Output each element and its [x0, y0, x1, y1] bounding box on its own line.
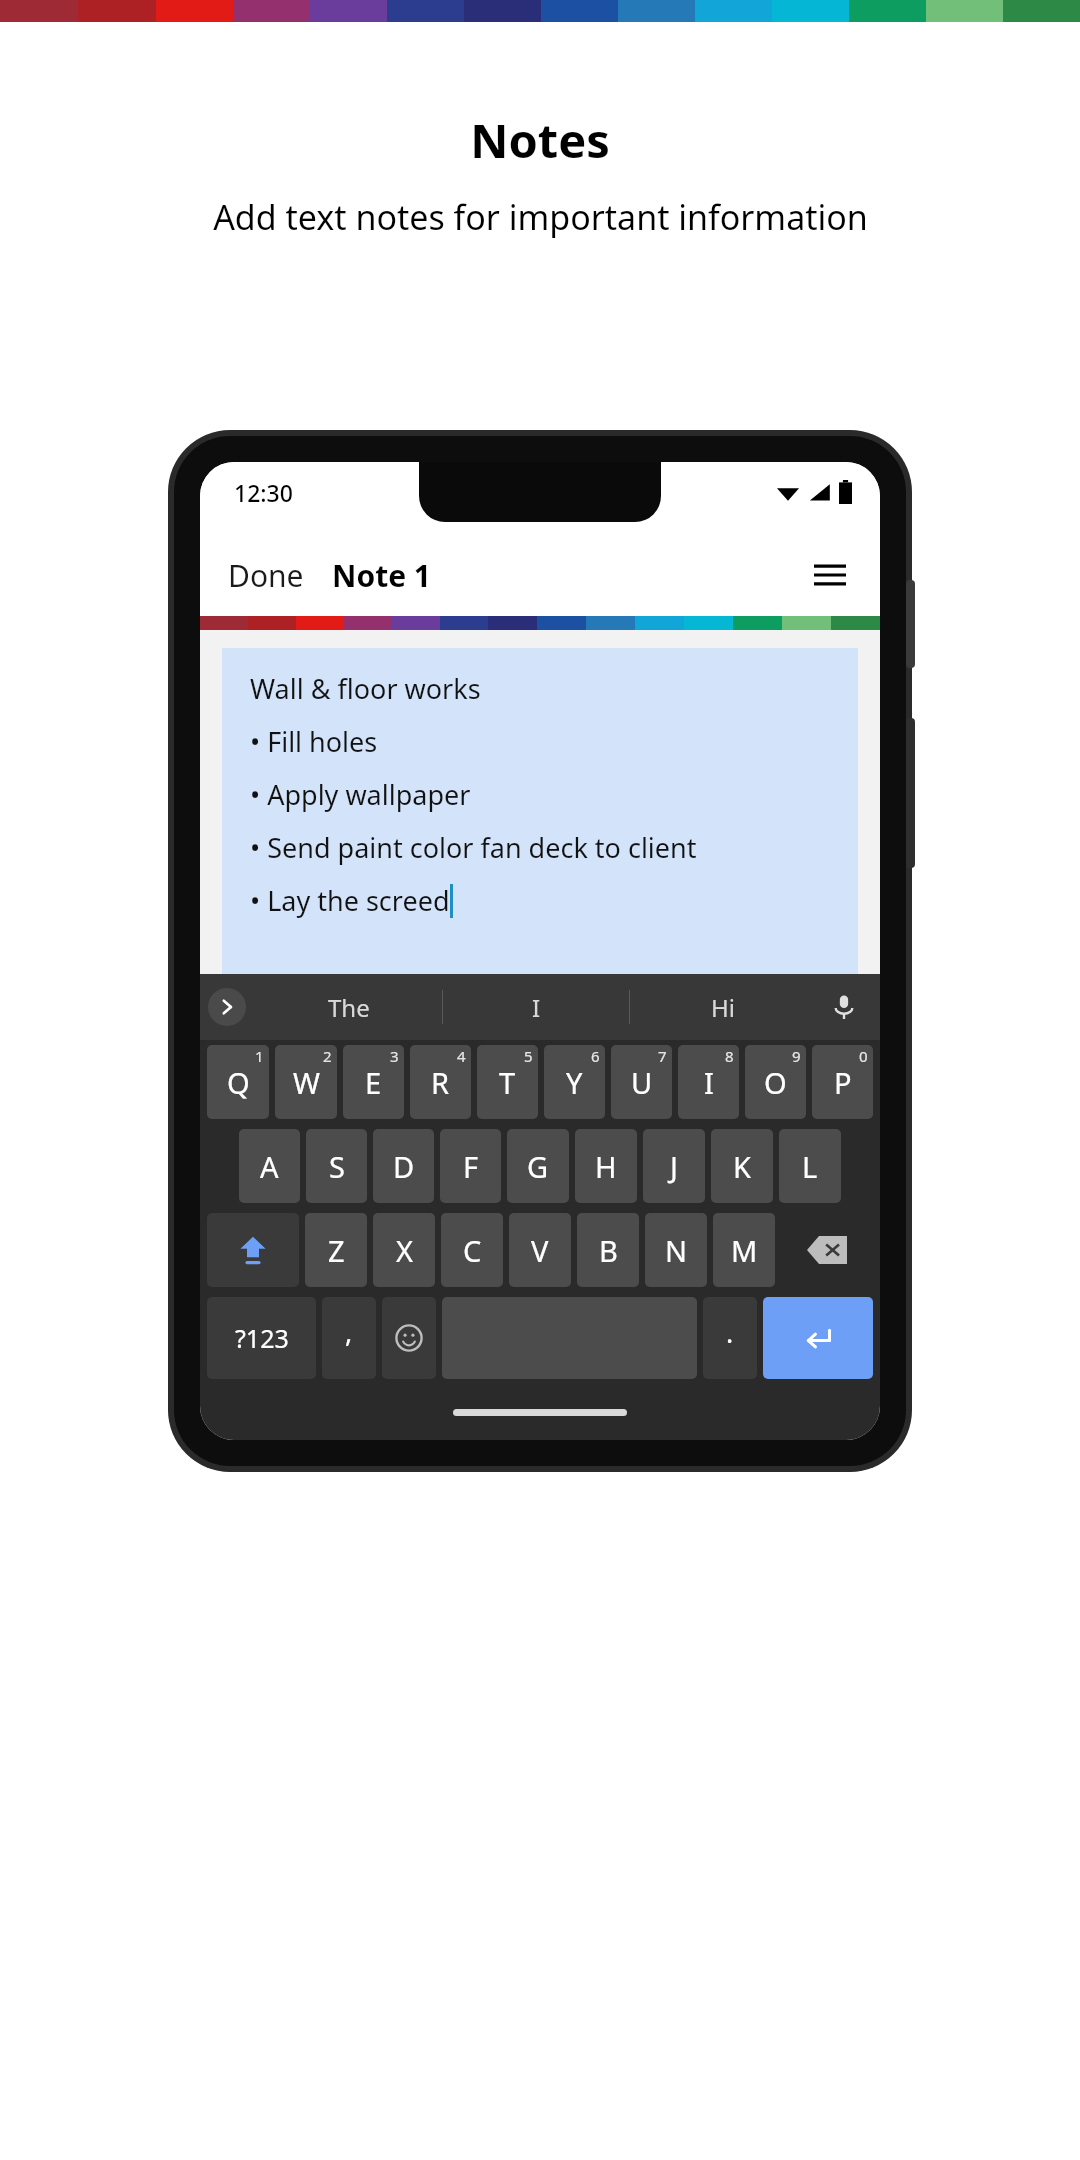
staticText: 12:30	[234, 477, 293, 508]
button[interactable]: T	[477, 1045, 538, 1119]
staticText: O	[764, 1063, 787, 1102]
staticText: Hi	[711, 991, 735, 1024]
button[interactable]: E	[343, 1045, 404, 1119]
button[interactable]: Menu	[792, 537, 868, 613]
staticText: ?123	[235, 1321, 289, 1355]
staticText: F	[463, 1147, 479, 1186]
button[interactable]: K	[711, 1129, 773, 1203]
staticText: • Apply wallpaper	[250, 776, 471, 813]
button[interactable]: Y	[544, 1045, 605, 1119]
button[interactable]: Wall & floor works	[222, 648, 858, 974]
button[interactable]: V	[509, 1213, 571, 1287]
staticText: A	[260, 1147, 279, 1186]
button[interactable]: Expand suggestions	[208, 988, 246, 1026]
staticText: U	[631, 1063, 653, 1102]
staticText: 8	[725, 1046, 734, 1066]
staticText: E	[365, 1063, 382, 1102]
staticText: D	[393, 1147, 415, 1186]
button[interactable]: I	[443, 974, 629, 1040]
button[interactable]: B	[577, 1213, 639, 1287]
button[interactable]: Voice input	[822, 985, 866, 1029]
button[interactable]: Shift	[207, 1213, 299, 1287]
button[interactable]: Emoji	[382, 1297, 436, 1379]
button[interactable]: Q	[207, 1045, 269, 1119]
staticText: C	[463, 1231, 482, 1270]
button[interactable]: Done	[200, 545, 332, 606]
button[interactable]: R	[410, 1045, 471, 1119]
staticText: 6	[591, 1046, 600, 1066]
staticText: 5	[524, 1046, 533, 1066]
staticText: • Fill holes	[250, 723, 378, 760]
button[interactable]: H	[575, 1129, 637, 1203]
button[interactable]: W	[275, 1045, 337, 1119]
staticText: W	[293, 1063, 320, 1102]
staticText: X	[396, 1231, 413, 1270]
staticText: Note 1	[332, 555, 432, 596]
staticText: I	[532, 991, 541, 1024]
staticText: K	[733, 1147, 751, 1186]
staticText: The	[328, 991, 370, 1024]
button[interactable]: G	[507, 1129, 569, 1203]
staticText: L	[802, 1147, 818, 1186]
button[interactable]: X	[373, 1213, 435, 1287]
button[interactable]: .	[703, 1297, 757, 1379]
staticText: 4	[457, 1046, 466, 1066]
button[interactable]: L	[779, 1129, 841, 1203]
button[interactable]: U	[611, 1045, 672, 1119]
staticText: Wall & floor works	[250, 670, 481, 707]
button[interactable]: The	[256, 974, 442, 1040]
staticText: R	[431, 1063, 450, 1102]
button[interactable]: A	[239, 1129, 300, 1203]
button[interactable]: J	[643, 1129, 705, 1203]
staticText: 9	[792, 1046, 801, 1066]
staticText: 1	[255, 1046, 264, 1066]
button[interactable]: Enter	[763, 1297, 873, 1379]
button[interactable]: F	[440, 1129, 501, 1203]
button[interactable]: S	[306, 1129, 367, 1203]
staticText: • Send paint color fan deck to client	[250, 829, 697, 866]
button[interactable]: Z	[305, 1213, 367, 1287]
staticText: Z	[328, 1231, 345, 1270]
staticText: P	[834, 1063, 852, 1102]
staticText: B	[599, 1231, 618, 1270]
button[interactable]: M	[713, 1213, 775, 1287]
staticText: J	[670, 1147, 678, 1186]
staticText: ,	[345, 1313, 353, 1350]
button[interactable]: Hi	[630, 974, 816, 1040]
staticText: I	[704, 1063, 714, 1102]
staticText: T	[499, 1063, 516, 1102]
button[interactable]: ,	[322, 1297, 376, 1379]
staticText: H	[595, 1147, 617, 1186]
button[interactable]: ?123	[207, 1297, 316, 1379]
button[interactable]: N	[645, 1213, 707, 1287]
button[interactable]: O	[745, 1045, 806, 1119]
staticText: Notes	[470, 108, 610, 172]
staticText: Y	[566, 1063, 583, 1102]
staticText: .	[726, 1314, 734, 1351]
staticText: G	[527, 1147, 549, 1186]
staticText: N	[665, 1231, 688, 1270]
staticText: 7	[658, 1046, 667, 1066]
staticText: Add text notes for important information	[213, 194, 868, 240]
button[interactable]: C	[441, 1213, 503, 1287]
staticText: S	[329, 1147, 345, 1186]
staticText: V	[531, 1231, 549, 1270]
button[interactable]: I	[678, 1045, 739, 1119]
staticText: Q	[227, 1063, 250, 1102]
button[interactable]: Backspace	[781, 1213, 873, 1287]
staticText: • Lay the screed	[250, 882, 450, 919]
button[interactable]: Undo	[758, 1012, 842, 1096]
staticText: 2	[323, 1046, 332, 1066]
staticText: 3	[390, 1046, 399, 1066]
staticText: M	[731, 1231, 758, 1270]
button[interactable]: D	[373, 1129, 434, 1203]
button[interactable]: P	[812, 1045, 873, 1119]
staticText: 0	[859, 1046, 868, 1066]
staticText: Done	[228, 555, 304, 596]
